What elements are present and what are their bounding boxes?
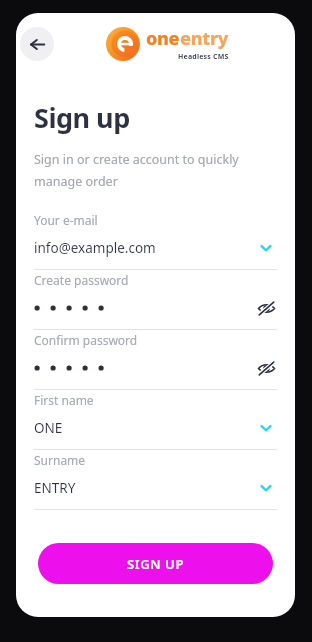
staticText: Headless CMS [178, 52, 229, 62]
staticText: First name [34, 392, 94, 408]
button[interactable]: First name [34, 390, 277, 450]
staticText: SIGN UP [127, 555, 184, 573]
staticText: Confirm password [34, 332, 138, 348]
button[interactable]: Surname [34, 450, 277, 510]
button[interactable]: Open Surname options [255, 478, 277, 498]
staticText: info@example.com [34, 239, 156, 257]
staticText: entry [180, 26, 229, 51]
button[interactable]: SIGN UP [38, 543, 273, 584]
staticText: one [146, 26, 180, 51]
staticText: manage order [34, 173, 118, 190]
button[interactable]: Show password [255, 358, 277, 378]
button[interactable]: Confirm password [34, 330, 277, 390]
staticText: Your e-mail [34, 212, 98, 228]
button[interactable]: Create password [34, 270, 277, 330]
staticText: ENTRY [34, 479, 76, 497]
button[interactable]: Open Your e-mail options [255, 238, 277, 258]
button[interactable]: Open First name options [255, 418, 277, 438]
button[interactable]: Your e-mail [34, 210, 277, 270]
staticText: Sign up [34, 99, 130, 136]
staticText: Sign in or create account to quickly [34, 151, 239, 168]
staticText: Surname [34, 452, 86, 468]
button[interactable]: Back [20, 27, 54, 61]
staticText: Create password [34, 272, 129, 288]
staticText: ONE [34, 419, 63, 437]
button[interactable]: Show password [255, 298, 277, 318]
